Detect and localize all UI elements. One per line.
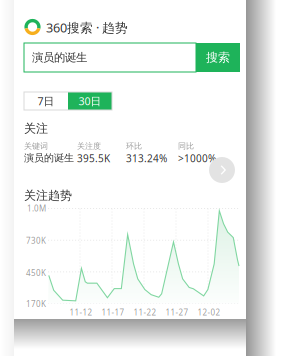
button[interactable]: 搜索 — [196, 43, 240, 72]
staticText: 395.5K — [77, 152, 110, 165]
staticText: >1000% — [178, 152, 216, 165]
staticText: 30日 — [78, 94, 101, 108]
staticText: 11-22 — [133, 307, 156, 318]
staticText: 450K — [26, 267, 46, 278]
staticText: 11-17 — [101, 307, 124, 318]
button[interactable]: Next — [209, 157, 235, 183]
staticText: 170K — [26, 298, 46, 309]
staticText: 关注度 — [77, 141, 101, 151]
staticText: 关键词 — [24, 141, 48, 151]
staticText: 11-27 — [165, 307, 188, 318]
staticText: 1.0M — [27, 203, 46, 214]
staticText: 环比 — [126, 141, 142, 151]
staticText: 同比 — [178, 141, 194, 151]
button[interactable]: 演员的诞生 — [24, 43, 196, 72]
button[interactable]: 30日 — [68, 92, 112, 110]
staticText: 360搜索 · 趋势 — [46, 19, 128, 36]
staticText: 演员的诞生 — [24, 152, 74, 164]
staticText: 演员的诞生 — [32, 50, 87, 65]
staticText: 7日 — [37, 94, 54, 108]
staticText: 313.24% — [126, 152, 167, 165]
staticText: 11-12 — [69, 307, 92, 318]
staticText: 关注 — [24, 121, 48, 136]
staticText: 关注趋势 — [24, 188, 72, 203]
button[interactable]: 7日 — [24, 92, 68, 110]
staticText: 730K — [26, 235, 46, 246]
staticText: 12-02 — [197, 307, 220, 318]
staticText: 搜索 — [206, 50, 230, 65]
